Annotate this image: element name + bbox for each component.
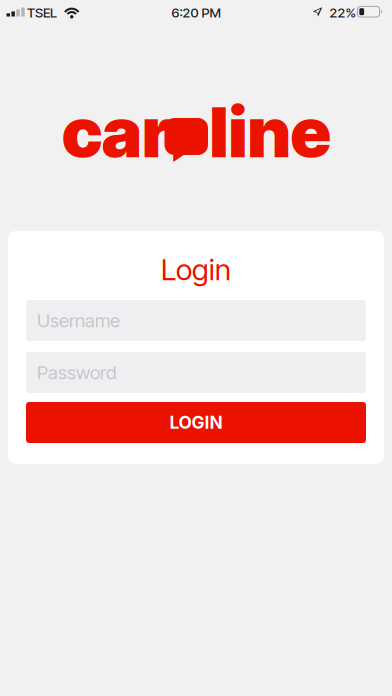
staticText: line <box>210 90 331 174</box>
staticText: car <box>62 90 170 174</box>
staticText: LOGIN <box>169 412 222 433</box>
staticText: 6:20 PM <box>171 4 220 21</box>
staticText: Username <box>37 309 120 332</box>
button[interactable]: Password <box>26 352 366 393</box>
staticText: Login <box>161 252 231 287</box>
button[interactable]: LOGIN <box>26 402 366 443</box>
button[interactable]: Username <box>26 300 366 341</box>
staticText: Password <box>37 361 116 384</box>
staticText: TSEL <box>27 4 57 21</box>
staticText: 22% <box>329 4 355 21</box>
